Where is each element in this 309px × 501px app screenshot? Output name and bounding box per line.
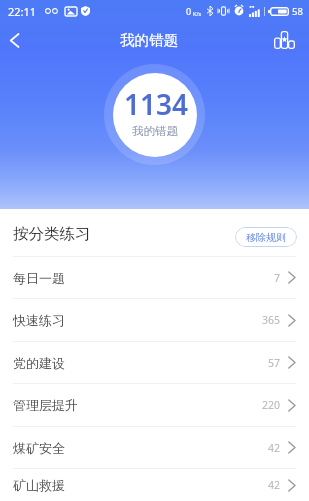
staticText: 365 — [262, 313, 281, 327]
staticText: 每日一题 — [13, 270, 65, 286]
staticText: 220 — [262, 398, 281, 412]
staticText: 7 — [274, 271, 281, 285]
staticText: 22:11 — [8, 4, 37, 19]
staticText: 党的建设 — [13, 355, 65, 371]
staticText: 煤矿安全 — [13, 440, 65, 456]
button[interactable]: 煤矿安全 — [0, 427, 309, 468]
staticText: 57 — [268, 356, 281, 370]
staticText: 1134 — [124, 85, 189, 123]
staticText: 矿山救援 — [13, 477, 65, 493]
button[interactable]: 每日一题 — [0, 257, 309, 298]
button[interactable]: 快速练习 — [0, 299, 309, 341]
staticText: 移除规则 — [246, 231, 286, 244]
button[interactable]: 管理层提升 — [0, 384, 309, 426]
staticText: 我的错题 — [132, 124, 178, 138]
button[interactable]: Ranking — [272, 28, 296, 52]
button[interactable]: 党的建设 — [0, 342, 309, 383]
staticText: 42 — [268, 478, 281, 492]
staticText: 按分类练习 — [13, 224, 91, 244]
staticText: 58 — [292, 5, 303, 18]
staticText: 我的错题 — [120, 31, 178, 49]
staticText: 42 — [268, 441, 281, 455]
staticText: K/s — [193, 10, 202, 17]
button[interactable]: Back — [0, 26, 28, 54]
staticText: 0 — [186, 5, 192, 17]
button[interactable]: 矿山救援 — [0, 469, 309, 501]
staticText: 快速练习 — [13, 312, 65, 328]
button[interactable]: 移除规则 — [235, 227, 297, 247]
staticText: 管理层提升 — [13, 397, 78, 413]
